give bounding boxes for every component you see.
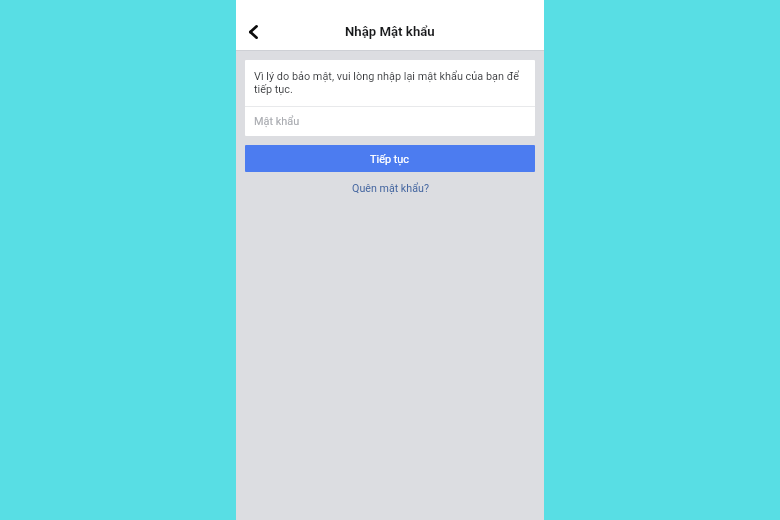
- staticText: Mật khẩu: [254, 115, 300, 128]
- staticText: Vì lý do bảo mật, vui lòng nhập lại mật …: [254, 70, 526, 95]
- button[interactable]: Mật khẩu: [245, 107, 535, 136]
- staticText: Tiếp tục: [370, 153, 410, 166]
- staticText: Nhập Mật khẩu: [345, 24, 435, 39]
- button[interactable]: Tiếp tục: [245, 145, 535, 172]
- button[interactable]: Quên mật khẩu?: [236, 172, 544, 200]
- button[interactable]: Back: [236, 15, 270, 49]
- staticText: Quên mật khẩu?: [352, 182, 429, 195]
